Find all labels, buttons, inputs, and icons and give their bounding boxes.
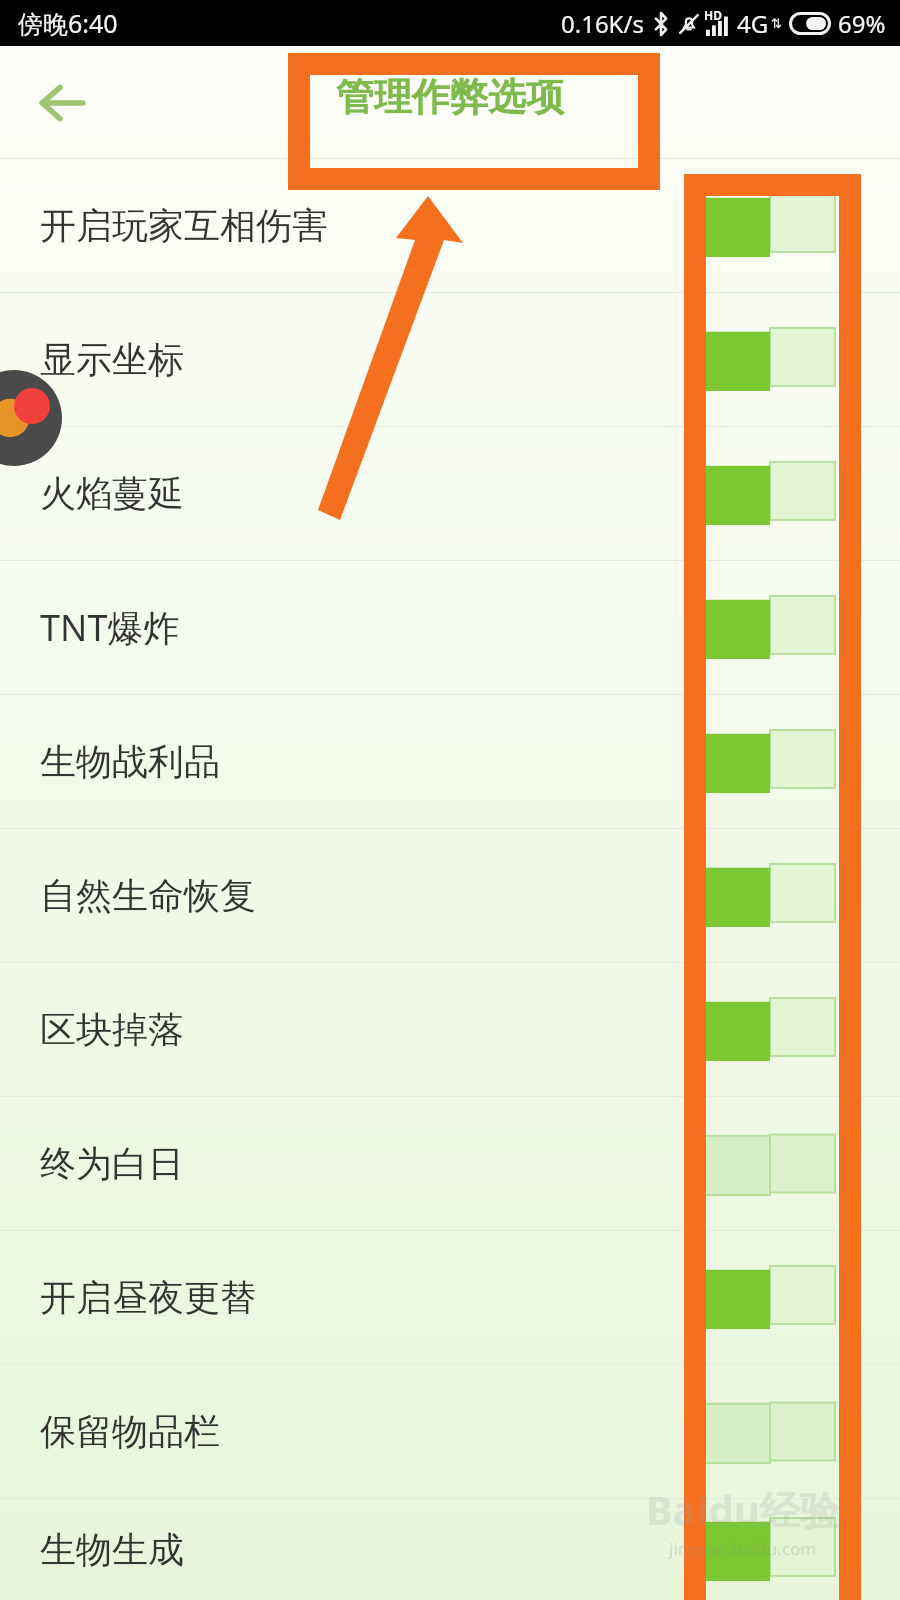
button[interactable]: 生物战利品	[0, 695, 900, 828]
staticText: jingyan.baidu.com	[669, 1537, 817, 1560]
button[interactable]: 生物生成	[0, 1499, 900, 1600]
staticText: 自然生命恢复	[40, 873, 705, 918]
button[interactable]: TNT爆炸	[0, 561, 900, 694]
staticText: 生物战利品	[40, 739, 705, 784]
staticText: Baidu经验	[646, 1482, 840, 1537]
staticText: 开启昼夜更替	[40, 1275, 705, 1320]
button[interactable]: Floating assistant	[0, 370, 62, 466]
staticText: ⇅	[771, 16, 782, 31]
button[interactable]: 火焰蔓延	[0, 427, 900, 560]
button[interactable]: 保留物品栏	[0, 1365, 900, 1498]
staticText: 0.16K/s	[561, 7, 644, 40]
staticText: 显示坐标	[40, 337, 705, 382]
staticText: 管理作弊选项	[336, 73, 564, 121]
staticText: 区块掉落	[40, 1007, 705, 1052]
button[interactable]: 自然生命恢复	[0, 829, 900, 962]
staticText: HD	[704, 7, 722, 23]
staticText: 4G	[737, 7, 769, 40]
staticText: 保留物品栏	[40, 1409, 705, 1454]
staticText: 69%	[838, 7, 886, 40]
staticText: 终为白日	[40, 1141, 705, 1186]
button[interactable]: 开启昼夜更替	[0, 1231, 900, 1364]
staticText: 火焰蔓延	[40, 471, 705, 516]
button[interactable]: 区块掉落	[0, 963, 900, 1096]
staticText: 傍晚6:40	[18, 6, 118, 40]
button[interactable]: 显示坐标	[0, 293, 900, 426]
button[interactable]: 终为白日	[0, 1097, 900, 1230]
staticText: 生物生成	[40, 1527, 705, 1572]
button[interactable]: Back	[22, 63, 102, 143]
button[interactable]: 开启玩家互相伤害	[0, 159, 900, 292]
staticText: 开启玩家互相伤害	[40, 203, 705, 248]
staticText: TNT爆炸	[40, 603, 705, 652]
